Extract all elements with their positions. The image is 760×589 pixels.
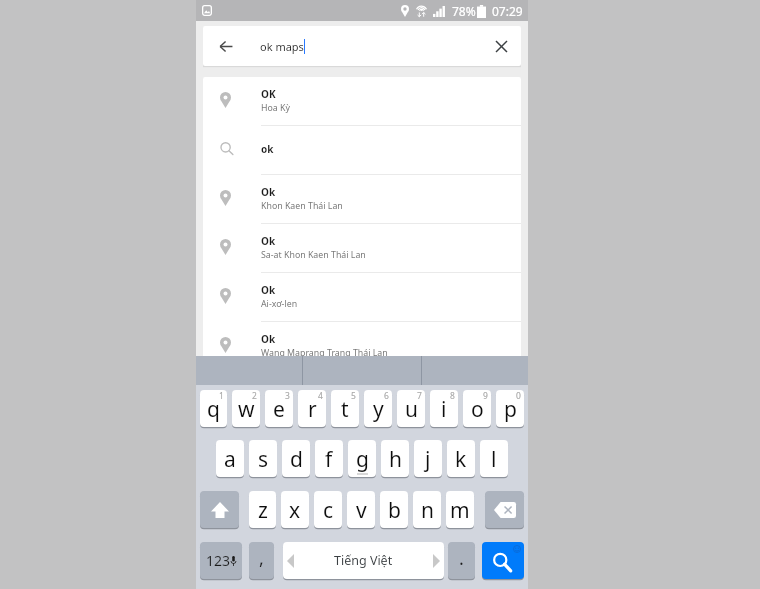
staticText: l [491,445,497,474]
button[interactable]: u [397,390,425,427]
button[interactable]: Ok [203,322,521,371]
staticText: 1 [219,390,224,402]
button[interactable]: . [448,542,475,579]
staticText: i [441,395,447,424]
button[interactable]: Search [482,542,524,579]
staticText: Wang Maprang Trang Thái Lan [261,347,388,359]
staticText: , [259,546,264,571]
staticText: p [504,395,517,424]
button[interactable]: g [348,440,376,477]
staticText: Ok [261,332,276,346]
button[interactable]: y [364,390,392,427]
staticText: f [325,445,333,474]
staticText: y [373,395,384,424]
staticText: Tiếng Việt [334,552,393,569]
staticText: Ok [261,283,276,297]
button[interactable]: Back [203,26,248,66]
staticText: j [425,445,431,474]
staticText: 0 [516,390,521,402]
staticText: c [323,496,334,525]
staticText: 78% [452,3,476,19]
staticText: OK [261,87,276,101]
staticText: 3 [285,390,290,402]
staticText: x [289,496,301,525]
staticText: g [356,445,369,474]
staticText: Khon Kaen Thái Lan [261,200,343,212]
staticText: 07:29 [492,3,523,19]
button[interactable]: x [281,491,309,528]
staticText: 7 [417,390,422,402]
button[interactable]: Backspace [485,491,524,528]
staticText: h [389,445,402,474]
button[interactable]: Space, Tiếng Việt [283,542,444,579]
staticText: 6 [384,390,389,402]
staticText: b [388,496,401,525]
staticText: Amphoe Mueang Khon Kaen [261,396,380,408]
button[interactable]: Ok [203,224,521,273]
staticText: Hoa Kỳ [261,102,290,114]
staticText: Sa-at Khon Kaen Thái Lan [261,249,366,261]
button[interactable]: , [249,542,274,579]
staticText: o [471,395,484,424]
button[interactable]: Shift [200,491,239,528]
staticText: Ai-xơ-len [261,298,298,310]
button[interactable]: c [314,491,342,528]
button[interactable]: i [430,390,458,427]
button[interactable]: f [315,440,343,477]
staticText: ok maps [260,39,304,54]
staticText: a [224,445,236,474]
button[interactable]: d [282,440,310,477]
button[interactable]: ok [203,126,521,175]
staticText: ok [261,142,274,156]
button[interactable]: 123 [200,542,242,579]
button[interactable]: l [480,440,508,477]
button[interactable]: w [232,390,260,427]
staticText: 5 [351,390,356,402]
button[interactable]: m [446,491,474,528]
button[interactable]: q [200,390,227,427]
staticText: v [356,496,367,525]
button[interactable]: j [414,440,442,477]
button[interactable]: s [249,440,277,477]
button[interactable]: t [331,390,359,427]
staticText: Ok [261,381,276,395]
staticText: w [238,395,255,424]
staticText: 4 [318,390,323,402]
staticText: Ok [261,234,276,248]
staticText: r [308,395,317,424]
button[interactable]: b [380,491,408,528]
button[interactable]: k [447,440,475,477]
button[interactable]: a [216,440,244,477]
staticText: . [459,546,464,571]
button[interactable]: p [496,390,524,427]
button[interactable]: n [413,491,441,528]
button[interactable]: o [463,390,491,427]
staticText: 8 [450,390,455,402]
staticText: z [258,496,268,525]
button[interactable]: Clear search [481,26,521,66]
staticText: q [207,395,220,424]
button[interactable]: z [249,491,276,528]
staticText: 123 [206,551,231,570]
staticText: m [450,496,470,525]
staticText: k [455,445,467,474]
staticText: s [258,445,269,474]
staticText: d [290,445,303,474]
button[interactable]: r [298,390,326,427]
button[interactable]: Ok [203,175,521,224]
button[interactable]: h [381,440,409,477]
button[interactable]: v [347,491,375,528]
staticText: u [405,395,418,424]
staticText: 9 [483,390,488,402]
staticText: Ok [261,185,276,199]
button[interactable]: Ok [203,371,521,420]
staticText: e [273,395,285,424]
button[interactable]: OK [203,77,521,126]
button[interactable]: e [265,390,293,427]
staticText: n [421,496,434,525]
button[interactable]: Ok [203,273,521,322]
staticText: 2 [252,390,257,402]
